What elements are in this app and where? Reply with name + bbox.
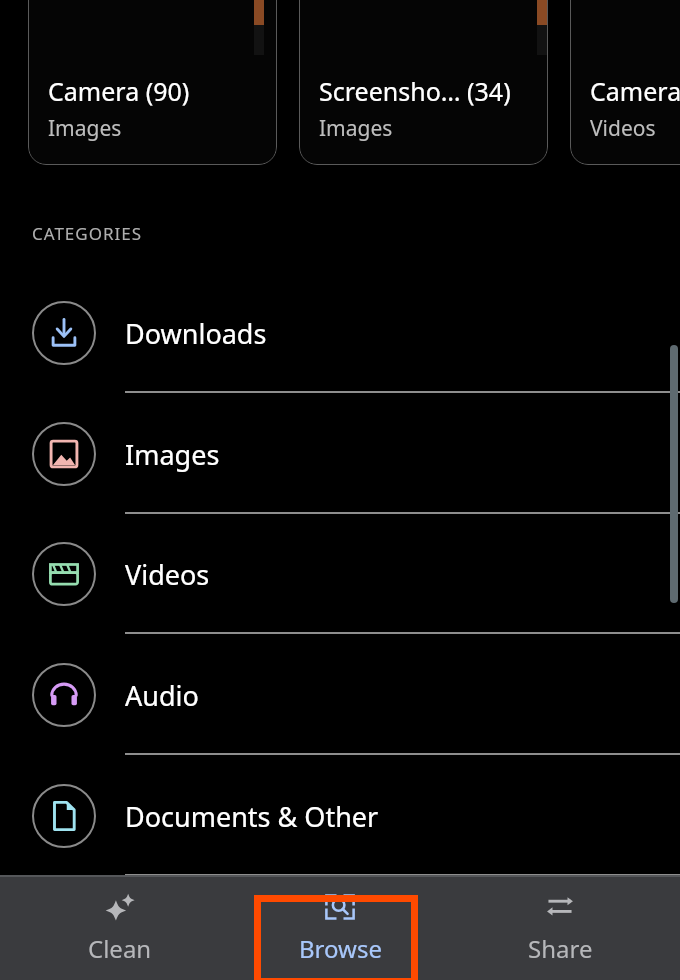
button[interactable]: Videos (0, 514, 680, 634)
staticText: Share (528, 932, 593, 965)
staticText: Downloads (125, 315, 267, 352)
staticText: Images (319, 114, 393, 143)
staticText: Videos (125, 556, 210, 593)
staticText: Documents & Other (125, 798, 379, 835)
staticText: Videos (590, 114, 656, 143)
button[interactable]: Camera (570, 0, 680, 165)
staticText: Images (125, 436, 220, 473)
staticText: Clean (88, 932, 152, 965)
button[interactable]: Camera (90) (28, 0, 277, 165)
staticText: Browse (299, 932, 382, 965)
staticText: Images (48, 114, 122, 143)
staticText: Audio (125, 677, 199, 714)
button[interactable]: Clean (20, 875, 220, 980)
staticText: Camera (590, 74, 680, 108)
button[interactable]: Share (460, 875, 660, 980)
button[interactable]: Downloads (0, 273, 680, 393)
staticText: Screensho… (34) (319, 74, 511, 108)
button[interactable]: Documents & Other (0, 756, 680, 876)
staticText: Camera (90) (48, 74, 190, 108)
staticText: CATEGORIES (32, 222, 143, 245)
button[interactable]: Audio (0, 635, 680, 755)
button[interactable]: Browse (240, 875, 440, 980)
button[interactable]: Images (0, 394, 680, 514)
button[interactable]: Screensho… (34) (299, 0, 548, 165)
